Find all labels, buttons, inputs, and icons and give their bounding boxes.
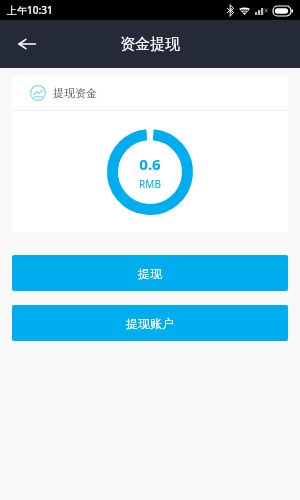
- staticText: 提现: [138, 266, 162, 281]
- staticText: 提现账户: [126, 316, 174, 331]
- staticText: 上午10:31: [7, 3, 53, 17]
- button[interactable]: 提现账户: [12, 305, 288, 341]
- staticText: 提现资金: [53, 86, 97, 100]
- staticText: RMB: [139, 177, 161, 191]
- staticText: 0.6: [139, 154, 161, 174]
- button[interactable]: 提现资金: [12, 76, 288, 110]
- button[interactable]: 提现: [12, 255, 288, 291]
- button[interactable]: Back: [10, 27, 44, 61]
- staticText: 资金提现: [120, 35, 180, 54]
